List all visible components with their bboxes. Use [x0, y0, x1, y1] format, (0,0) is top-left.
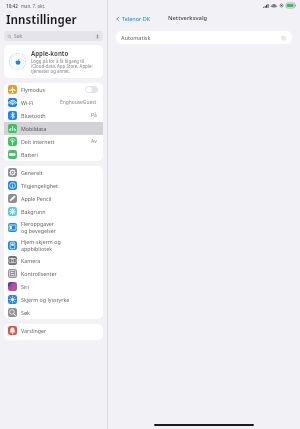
button[interactable]: Telenor DK [114, 13, 152, 24]
staticText: Skjerm og lysstyrke [21, 296, 70, 303]
staticText: appbibliotek [21, 245, 53, 252]
staticText: Siri [21, 283, 29, 290]
button[interactable]: Varslinger [4, 324, 103, 337]
button[interactable]: Wi-Fi [4, 96, 103, 109]
staticText: Fleroppgaver [21, 220, 54, 227]
staticText: Flymodus [21, 86, 46, 93]
button[interactable]: Bakgrunn [4, 205, 103, 218]
button[interactable]: Hjem-skjerm og [4, 236, 103, 254]
staticText: Logg på for å få tilgang til iCloud-data… [31, 58, 99, 74]
staticText: Varslinger [21, 327, 47, 334]
staticText: og bevegelser [21, 227, 56, 234]
button[interactable]: Tilgjengelighet [4, 179, 103, 192]
staticText: 10:42 [6, 3, 18, 9]
staticText: Nettverksvalg [168, 14, 208, 22]
button[interactable]: Søk [4, 306, 103, 319]
other: Laster [281, 35, 287, 41]
button[interactable]: Fleroppgaver [4, 218, 103, 236]
button[interactable]: Mobildata [4, 122, 103, 135]
button[interactable]: Generelt [4, 166, 103, 179]
button[interactable]: Apple Pencil [4, 192, 103, 205]
staticText: Søk [21, 309, 30, 316]
staticText: Delt internett [21, 138, 55, 145]
button[interactable]: Apple-konto [4, 45, 103, 78]
button[interactable]: Siri [4, 280, 103, 293]
button[interactable]: Søk [4, 31, 103, 41]
staticText: På [91, 112, 97, 119]
button[interactable]: Automatisk [116, 31, 292, 44]
staticText: Hjem-skjerm og [21, 238, 61, 245]
staticText: man. 7. okt. [21, 3, 46, 9]
staticText: Automatisk [121, 34, 151, 41]
staticText: Kamera [21, 257, 41, 264]
staticText: Søk [14, 33, 23, 40]
staticText: Kontrollsenter [21, 270, 57, 277]
staticText: Telenor DK [122, 15, 151, 22]
button[interactable]: Flymodus [4, 83, 103, 96]
staticText: Tilgjengelighet [21, 182, 58, 189]
staticText: Apple-konto [31, 49, 69, 57]
button[interactable]: Kamera [4, 254, 103, 267]
button[interactable]: Delt internett [4, 135, 103, 148]
button[interactable]: Skjerm og lysstyrke [4, 293, 103, 306]
button[interactable]: Batteri [4, 148, 103, 161]
staticText: Innstillinger [6, 12, 77, 28]
staticText: Mobildata [21, 125, 47, 132]
button[interactable]: Bluetooth [4, 109, 103, 122]
staticText: Av [91, 138, 97, 145]
staticText: Bluetooth [21, 112, 46, 119]
staticText: Generelt [21, 169, 43, 176]
staticText: Wi-Fi [21, 99, 34, 106]
staticText: EnghouseGuest [60, 99, 97, 106]
staticText: Batteri [21, 151, 38, 158]
button[interactable]: Kontrollsenter [4, 267, 103, 280]
staticText: Apple Pencil [21, 195, 52, 202]
staticText: Bakgrunn [21, 208, 46, 215]
